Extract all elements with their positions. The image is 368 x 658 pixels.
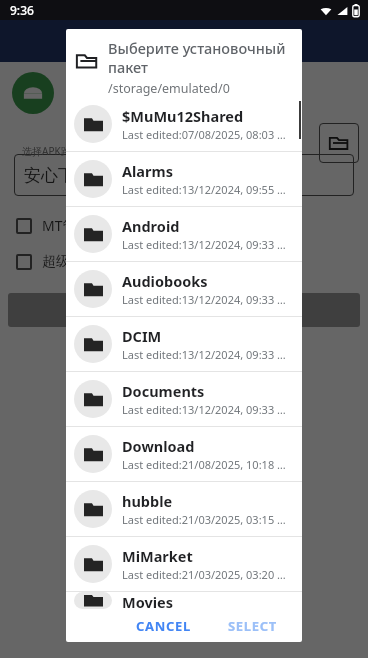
staticText: Documents [122, 381, 205, 401]
staticText: Movies [122, 592, 173, 609]
staticText: 选择APK路径 [22, 144, 81, 158]
button[interactable]: $MuMu12Shared [66, 97, 302, 151]
button[interactable]: MiMarket [66, 537, 302, 591]
staticText: Android [122, 216, 180, 236]
staticText: Audiobooks [122, 271, 208, 291]
staticText: MT管理器 [42, 216, 105, 235]
button[interactable]: Alarms [66, 152, 302, 206]
staticText: Last edited:13/12/2024, 09:33 上午 [122, 402, 292, 417]
staticText: Last edited:21/03/2025, 03:20 下午 [122, 567, 292, 582]
staticText: Last edited:13/12/2024, 09:55 上午 [122, 182, 292, 197]
staticText: hubble [122, 491, 173, 511]
staticText: Alarms [122, 161, 173, 181]
staticText: Last edited:21/08/2025, 10:18 上午 [122, 457, 292, 472]
staticText: Last edited:13/12/2024, 09:33 上午 [122, 292, 292, 307]
button[interactable]: Android [66, 207, 302, 261]
staticText: SELECT [228, 617, 278, 634]
staticText: MiMarket [122, 546, 193, 566]
button[interactable]: SELECT [216, 609, 290, 642]
staticText: Download [122, 436, 195, 456]
staticText: 9:36 [10, 2, 34, 18]
button[interactable]: Documents [66, 372, 302, 426]
staticText: non [66, 114, 90, 132]
staticText: Last edited:13/12/2024, 09:33 上午 [122, 237, 292, 252]
staticText: $MuMu12Shared [122, 106, 244, 126]
button[interactable]: Download [66, 427, 302, 481]
staticText: 超级去广告 [42, 253, 112, 271]
button[interactable]: hubble [66, 482, 302, 536]
staticText: Выберите установочный пакет [108, 38, 290, 77]
staticText: Last edited:13/12/2024, 09:33 上午 [122, 347, 292, 362]
staticText: CANCEL [136, 617, 192, 634]
button[interactable]: CANCEL [124, 609, 204, 642]
staticText: Last edited:21/03/2025, 03:15 下午 [122, 512, 292, 527]
button[interactable]: Movies [66, 592, 302, 609]
staticText: DCIM [122, 326, 162, 346]
staticText: /storage/emulated/0 [108, 80, 230, 97]
staticText: 安心下载 [24, 165, 92, 186]
button[interactable]: DCIM [66, 317, 302, 371]
button[interactable]: Audiobooks [66, 262, 302, 316]
staticText: Last edited:07/08/2025, 08:03 上午 [122, 127, 292, 142]
